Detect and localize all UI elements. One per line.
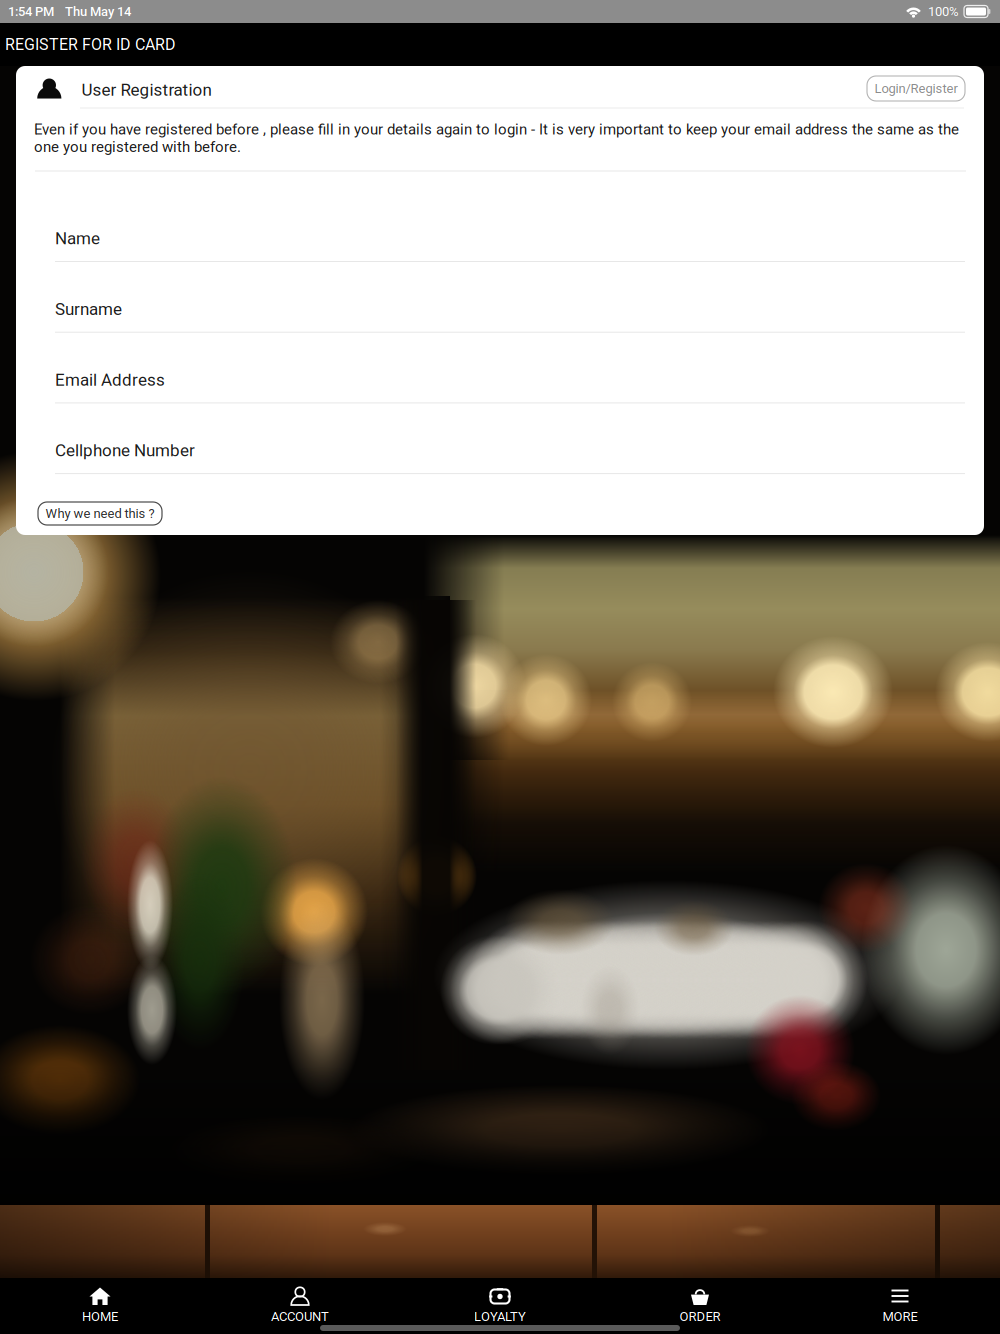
staticText: 100% — [928, 4, 959, 19]
staticText: ORDER — [679, 1309, 720, 1324]
button[interactable]: Why we need this ? — [38, 502, 162, 525]
staticText: Email Address — [55, 370, 165, 390]
staticText: HOME — [82, 1309, 118, 1324]
button[interactable]: Login/Register — [867, 76, 965, 101]
staticText: Login/Register — [874, 81, 957, 96]
staticText: REGISTER FOR ID CARD — [5, 35, 176, 54]
staticText: Even if you have registered before , ple… — [34, 120, 959, 156]
staticText: Name — [55, 228, 100, 248]
staticText: Why we need this ? — [45, 506, 154, 521]
button[interactable]: MORE — [800, 1286, 1000, 1322]
staticText: Cellphone Number — [55, 441, 195, 460]
button[interactable]: LOYALTY — [400, 1286, 600, 1322]
staticText: 1:54 PM — [8, 4, 54, 19]
staticText: User Registration — [81, 80, 211, 100]
staticText: ACCOUNT — [271, 1309, 329, 1324]
button[interactable]: ACCOUNT — [200, 1286, 400, 1322]
staticText: LOYALTY — [474, 1309, 526, 1324]
button[interactable]: ORDER — [600, 1286, 800, 1322]
staticText: MORE — [882, 1309, 917, 1324]
button[interactable]: HOME — [0, 1286, 200, 1322]
staticText: Surname — [55, 299, 122, 319]
staticText: Thu May 14 — [65, 4, 131, 19]
